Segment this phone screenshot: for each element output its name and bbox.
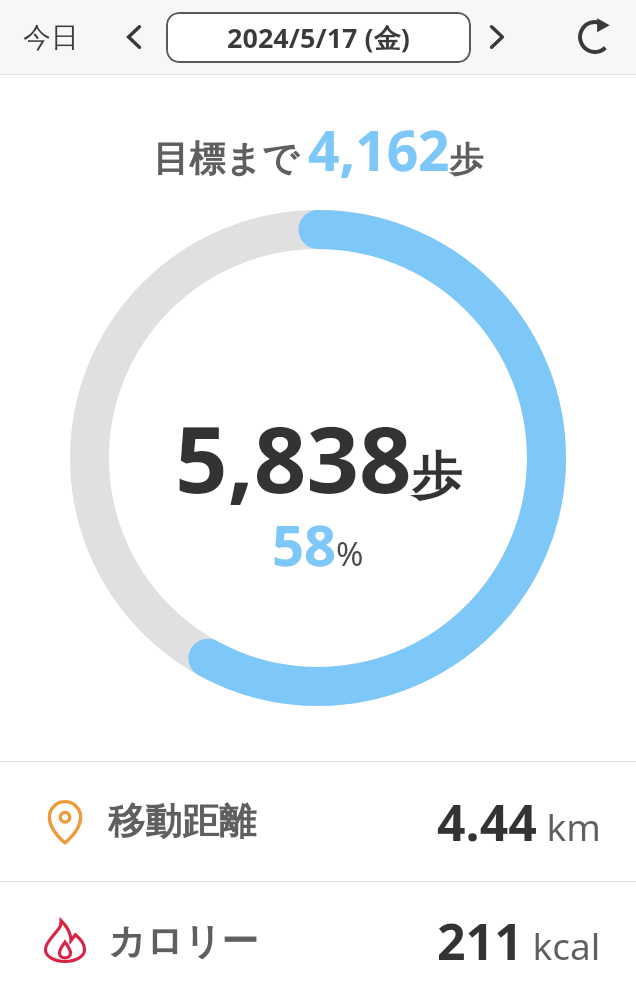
staticText: 移動距離: [108, 798, 256, 845]
button[interactable]: 今日: [0, 0, 102, 74]
button[interactable]: Previous day: [102, 0, 166, 74]
button[interactable]: カロリー: [0, 882, 636, 1000]
button[interactable]: Refresh: [522, 0, 636, 74]
staticText: 211 kcal: [437, 907, 601, 975]
staticText: 58%: [272, 506, 364, 582]
button[interactable]: 2024/5/17 (金): [166, 12, 471, 63]
button[interactable]: 移動距離: [0, 762, 636, 881]
staticText: 今日: [23, 20, 79, 55]
staticText: 4.44 km: [437, 788, 601, 856]
button[interactable]: Next day: [471, 0, 522, 74]
staticText: カロリー: [108, 918, 259, 965]
staticText: 5,838歩: [175, 395, 462, 520]
staticText: 2024/5/17 (金): [227, 19, 410, 56]
staticText: 目標まで 4,162歩: [153, 112, 484, 187]
